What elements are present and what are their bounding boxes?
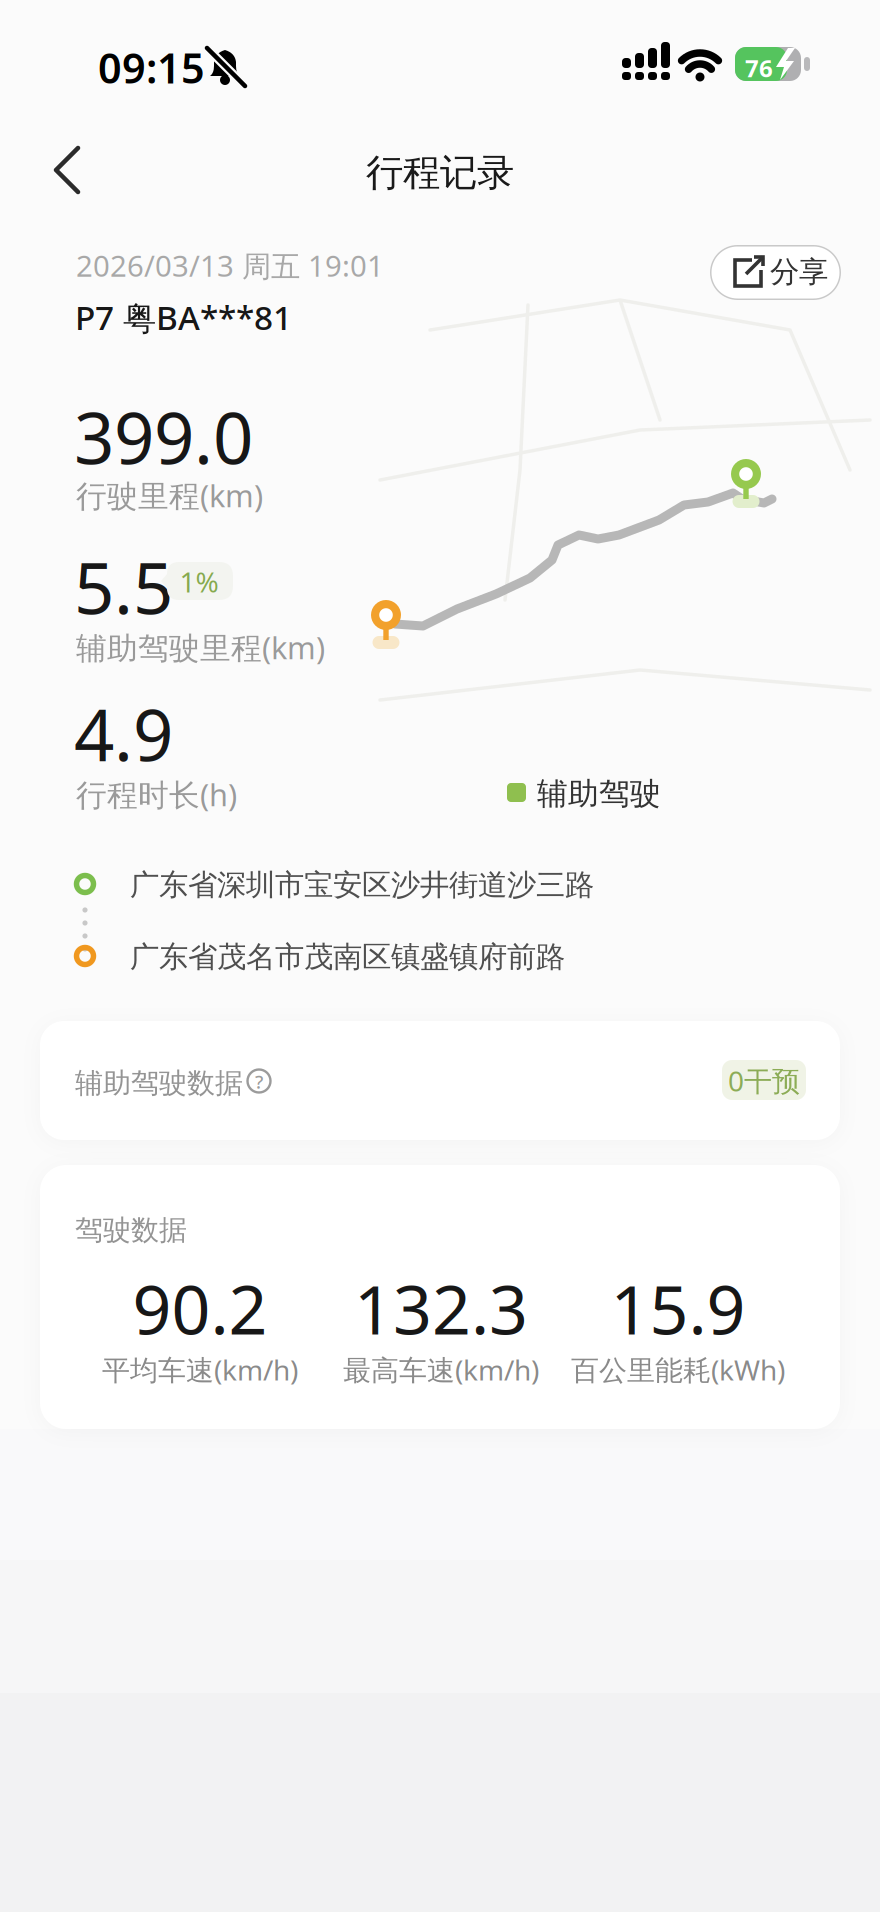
staticText: 分享 bbox=[770, 254, 828, 290]
staticText: 辅助驾驶 bbox=[537, 775, 661, 813]
staticText: 1% bbox=[179, 563, 218, 600]
staticText: 90.2 bbox=[132, 1263, 267, 1353]
staticText: 15.9 bbox=[610, 1263, 745, 1353]
staticText: P7 粤BA***81 bbox=[75, 295, 292, 339]
staticText: 平均车速(km/h) bbox=[102, 1351, 298, 1388]
staticText: 辅助驾驶数据 bbox=[75, 1066, 243, 1100]
staticText: 5.5 bbox=[74, 540, 173, 634]
staticText: 行驶里程(km) bbox=[76, 475, 263, 516]
staticText: 09:15 bbox=[98, 40, 205, 95]
staticText: 百公里能耗(kWh) bbox=[571, 1351, 785, 1388]
staticText: 最高车速(km/h) bbox=[343, 1351, 539, 1388]
staticText: ? bbox=[255, 1069, 263, 1094]
button[interactable]: 辅助驾驶数据说明 bbox=[245, 1067, 273, 1095]
staticText: 辅助驾驶里程(km) bbox=[76, 627, 325, 668]
button[interactable]: 分享 bbox=[710, 245, 841, 300]
staticText: 399.0 bbox=[74, 390, 253, 484]
staticText: 行程记录 bbox=[366, 150, 514, 196]
staticText: 广东省茂名市茂南区镇盛镇府前路 bbox=[130, 939, 565, 975]
staticText: 2026/03/13 周五 19:01 bbox=[76, 246, 384, 285]
staticText: 广东省深圳市宝安区沙井街道沙三路 bbox=[130, 867, 594, 903]
staticText: 0干预 bbox=[728, 1062, 800, 1099]
button[interactable]: Back bbox=[48, 140, 108, 200]
staticText: 4.9 bbox=[74, 687, 173, 781]
staticText: 驾驶数据 bbox=[75, 1213, 187, 1247]
staticText: 76 bbox=[745, 52, 773, 84]
staticText: 132.3 bbox=[354, 1263, 528, 1353]
staticText: 行程时长(h) bbox=[76, 774, 237, 815]
